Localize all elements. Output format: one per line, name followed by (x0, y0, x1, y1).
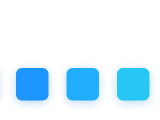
button[interactable]: Item (117, 68, 149, 100)
button[interactable]: Item (66, 68, 99, 100)
button[interactable]: Item (16, 68, 48, 100)
